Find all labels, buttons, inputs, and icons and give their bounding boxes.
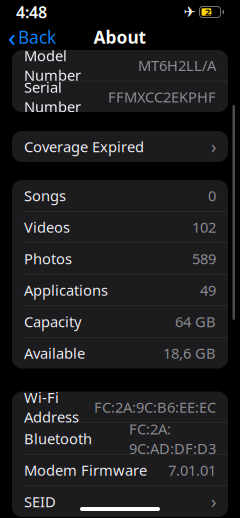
staticText: SEID (24, 492, 56, 511)
staticText: Coverage Expired (24, 137, 144, 156)
staticText: 64 GB (175, 312, 216, 331)
staticText: 589 (192, 249, 216, 268)
staticText: Serial Number (24, 77, 81, 116)
staticText: 0 (208, 186, 216, 205)
staticText: Capacity (24, 312, 81, 331)
staticText: Bluetooth (24, 429, 92, 448)
staticText: About (93, 25, 146, 48)
button[interactable]: ‹ (0, 24, 64, 50)
staticText: Wi-Fi Address (24, 387, 79, 426)
staticText: Videos (24, 217, 70, 237)
staticText: Available (24, 343, 85, 363)
button[interactable]: SEID (12, 486, 228, 517)
staticText: 7.01.01 (168, 460, 216, 480)
staticText: 102 (192, 217, 216, 237)
staticText: › (211, 490, 216, 513)
staticText: ✈ (183, 4, 195, 20)
button[interactable]: Coverage Expired (12, 131, 228, 162)
staticText: 23 (205, 6, 215, 18)
staticText: 49 (200, 280, 216, 300)
staticText: Back (18, 25, 56, 48)
staticText: MT6H2LL/A (138, 55, 216, 75)
staticText: › (211, 135, 216, 158)
staticText: FC:2A:9C:B6:EE:EC (94, 397, 216, 417)
staticText: ‹ (8, 21, 16, 53)
staticText: FFMXCC2EKPHF (108, 87, 216, 106)
staticText: 4:48 (16, 1, 47, 23)
staticText: Model Number (24, 46, 81, 85)
staticText: Songs (24, 186, 66, 205)
staticText: 18,6 GB (163, 343, 216, 363)
staticText: Applications (24, 280, 108, 300)
staticText: Modem Firmware (24, 460, 147, 480)
staticText: Photos (24, 249, 72, 268)
staticText: FC:2A:9C:AD:DF:D3 (129, 419, 216, 458)
